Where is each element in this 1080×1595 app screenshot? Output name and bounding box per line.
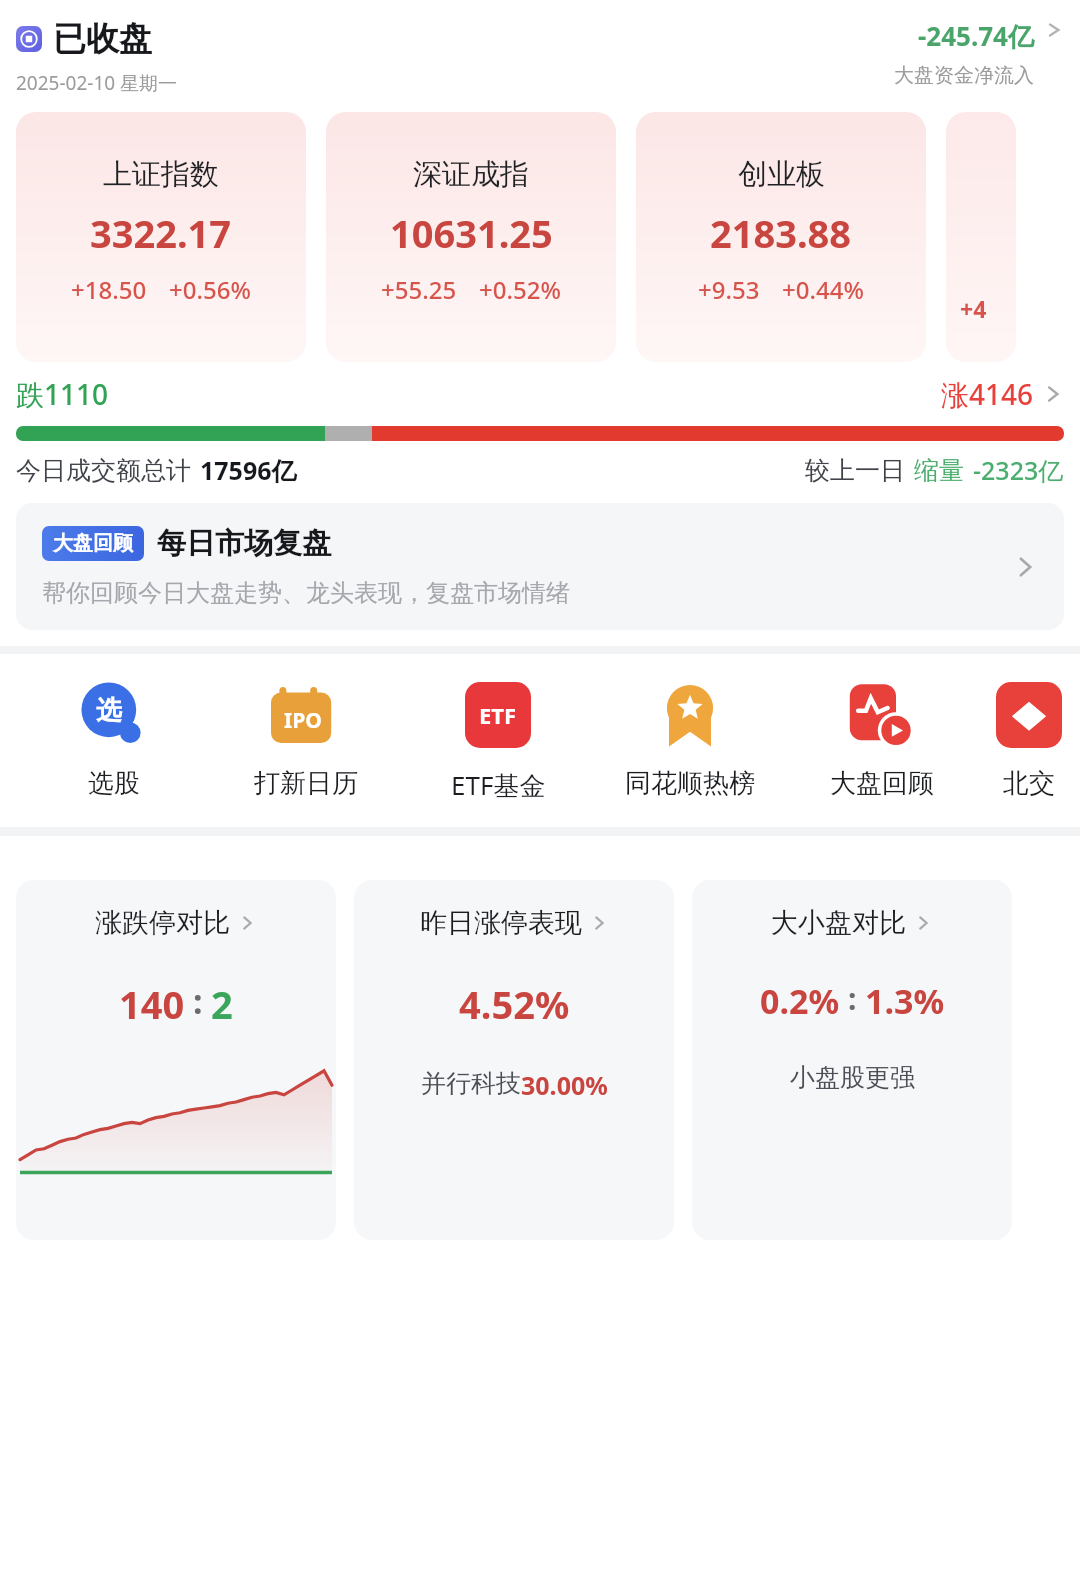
- staticText: 4.52%: [459, 978, 570, 1030]
- staticText: +0.44%: [782, 273, 864, 306]
- button[interactable]: 大盘回顾: [16, 503, 1064, 630]
- staticText: :: [848, 978, 857, 1019]
- staticText: +0.52%: [479, 273, 561, 306]
- staticText: -2323亿: [973, 453, 1064, 487]
- staticText: +55.25: [381, 273, 457, 306]
- staticText: 较上一日: [805, 455, 905, 486]
- staticText: 30.00%: [521, 1068, 608, 1102]
- staticText: 涨4146: [941, 375, 1034, 413]
- staticText: 选: [96, 694, 122, 727]
- staticText: 选股: [88, 767, 140, 800]
- staticText: -245.74亿: [918, 18, 1034, 54]
- button[interactable]: 同花顺热榜: [594, 676, 786, 800]
- staticText: 同花顺热榜: [625, 767, 755, 800]
- button[interactable]: 跌1110: [0, 375, 1080, 441]
- staticText: +18.50: [71, 273, 147, 306]
- staticText: 创业板: [738, 156, 825, 193]
- staticText: 1.3%: [865, 978, 945, 1024]
- staticText: 140: [119, 978, 185, 1030]
- staticText: 大盘回顾: [53, 531, 133, 556]
- staticText: 10631.25: [390, 207, 553, 259]
- button[interactable]: 上证指数: [16, 112, 306, 362]
- button[interactable]: 大盘回顾: [786, 676, 978, 800]
- staticText: 跌1110: [16, 375, 109, 413]
- staticText: 深证成指: [413, 156, 529, 193]
- button[interactable]: 大小盘对比: [692, 880, 1012, 1240]
- staticText: 0.2%: [760, 978, 840, 1024]
- button[interactable]: -245.74亿: [886, 18, 1064, 88]
- staticText: 2183.88: [710, 207, 852, 259]
- staticText: 打新日历: [254, 767, 358, 800]
- staticText: 大盘回顾: [830, 767, 934, 800]
- staticText: 每日市场复盘: [157, 525, 331, 562]
- staticText: ETF基金: [451, 767, 546, 803]
- staticText: 小盘股更强: [790, 1062, 915, 1093]
- staticText: 3322.17: [90, 207, 232, 259]
- staticText: +9.53: [698, 273, 760, 306]
- button[interactable]: 北交: [978, 676, 1080, 800]
- staticText: ETF: [479, 700, 517, 730]
- staticText: 大小盘对比: [771, 906, 906, 940]
- staticText: 17596亿: [200, 453, 297, 487]
- button[interactable]: ETF: [402, 676, 594, 803]
- staticText: +4: [960, 293, 987, 324]
- staticText: :: [193, 978, 203, 1024]
- button[interactable]: 创业板: [636, 112, 926, 362]
- button[interactable]: 涨跌停对比: [16, 880, 336, 1240]
- staticText: 缩量: [914, 455, 964, 486]
- button[interactable]: 深证成指: [326, 112, 616, 362]
- staticText: 今日成交额总计: [16, 455, 191, 486]
- button[interactable]: IPO: [210, 676, 402, 800]
- button[interactable]: 选: [18, 676, 210, 800]
- staticText: 涨跌停对比: [95, 906, 230, 940]
- staticText: 并行科技: [421, 1068, 521, 1099]
- staticText: IPO: [284, 706, 322, 735]
- staticText: 上证指数: [103, 156, 219, 193]
- staticText: 帮你回顾今日大盘走势、龙头表现，复盘市场情绪: [42, 578, 570, 608]
- staticText: 北交: [1003, 767, 1055, 800]
- button[interactable]: +4: [946, 112, 1016, 362]
- staticText: +0.56%: [169, 273, 251, 306]
- staticText: 昨日涨停表现: [420, 906, 582, 940]
- staticText: 2025-02-10 星期一: [16, 70, 178, 96]
- staticText: 已收盘: [53, 18, 152, 60]
- staticText: 大盘资金净流入: [894, 63, 1034, 88]
- staticText: 2: [211, 978, 233, 1030]
- button[interactable]: 昨日涨停表现: [354, 880, 674, 1240]
